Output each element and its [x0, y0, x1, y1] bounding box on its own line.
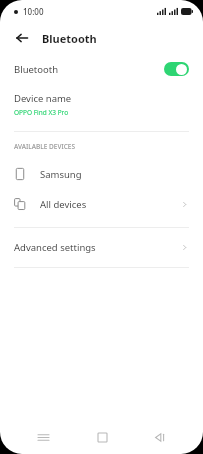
button[interactable]: Bluetooth on [164, 62, 189, 76]
staticText: AVAILABLE DEVICES [14, 142, 76, 151]
staticText: Bluetooth [14, 63, 59, 76]
staticText: OPPO Find X3 Pro [14, 108, 69, 117]
button[interactable]: Home [87, 422, 117, 452]
button[interactable]: Back [12, 28, 32, 48]
staticText: Samsung [40, 168, 82, 181]
button[interactable]: Device name [0, 90, 203, 119]
button[interactable]: Samsung [0, 159, 203, 189]
button[interactable]: All devices [0, 189, 203, 219]
button[interactable]: Recent apps [28, 422, 58, 452]
button[interactable]: Bluetooth [0, 54, 203, 84]
button[interactable]: Advanced settings [0, 228, 203, 267]
staticText: Advanced settings [14, 241, 96, 254]
staticText: Bluetooth [42, 31, 97, 46]
staticText: Device name [14, 92, 72, 105]
staticText: 10:00 [23, 6, 44, 17]
button[interactable]: Back [145, 422, 175, 452]
staticText: All devices [40, 198, 87, 211]
